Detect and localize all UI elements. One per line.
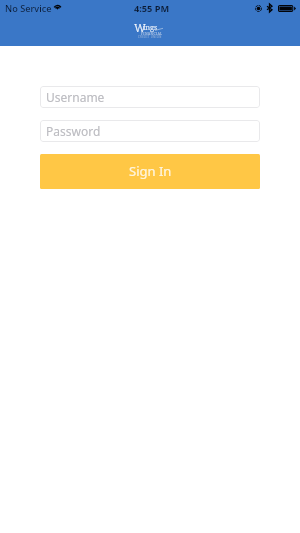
staticText: Password	[46, 123, 101, 139]
staticText: No Service	[5, 2, 52, 15]
staticText: W	[134, 20, 146, 36]
staticText: 4:55 PM	[134, 2, 170, 15]
staticText: Username	[46, 89, 105, 105]
staticText: CREDIT UNION	[138, 35, 162, 39]
staticText: ings	[143, 22, 158, 32]
button[interactable]: Sign In	[40, 154, 260, 189]
button[interactable]: Password	[40, 120, 260, 142]
button[interactable]: Username	[40, 86, 260, 108]
staticText: FINANCIAL	[141, 31, 163, 36]
staticText: Sign In	[129, 162, 172, 180]
